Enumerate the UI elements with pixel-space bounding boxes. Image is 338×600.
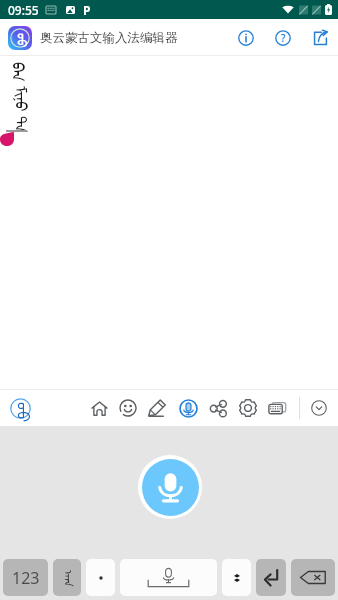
button[interactable]: Home: [85, 393, 114, 423]
button[interactable]: Share: [305, 23, 335, 53]
staticText: ?: [281, 31, 286, 45]
button[interactable]: Share: [204, 393, 233, 423]
button[interactable]: Mongolian input: [9, 397, 31, 419]
button[interactable]: 123: [3, 559, 48, 596]
staticText: 09:55: [8, 2, 39, 18]
button[interactable]: Space: [120, 559, 217, 596]
staticText: 123: [12, 567, 40, 589]
staticText: 奥云蒙古文输入法编辑器: [40, 30, 178, 46]
button[interactable]: Handwriting: [142, 393, 172, 423]
button[interactable]: Separator: [86, 559, 115, 596]
button[interactable]: Voice input: [172, 393, 204, 423]
button[interactable]: Mongolian letters: [53, 559, 81, 596]
button[interactable]: Voice input: [142, 459, 199, 516]
staticText: P: [83, 2, 91, 18]
button[interactable]: App icon: [8, 26, 32, 50]
button[interactable]: Help: [268, 23, 298, 53]
button[interactable]: Switch layout: [222, 559, 251, 596]
button[interactable]: Collapse keyboard: [307, 396, 331, 420]
button[interactable]: Settings: [233, 393, 262, 423]
button[interactable]: Backspace: [291, 559, 335, 596]
button[interactable]: Emoji: [114, 393, 142, 423]
button[interactable]: Enter: [256, 559, 286, 596]
button[interactable]: Keyboard: [262, 393, 292, 423]
button[interactable]: Info: [231, 23, 261, 53]
